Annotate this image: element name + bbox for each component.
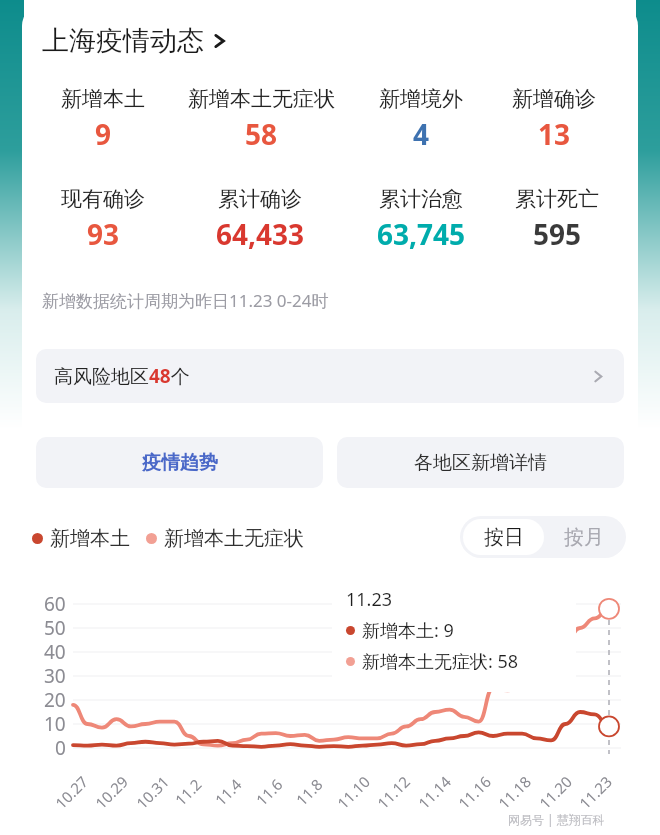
button[interactable]: 疫情趋势 — [36, 437, 323, 488]
staticText: 93 — [87, 215, 120, 253]
staticText: 11.18 — [494, 771, 535, 813]
staticText: 64,433 — [216, 215, 305, 253]
button[interactable]: 上海疫情动态 — [42, 20, 227, 62]
button[interactable]: 高风险地区48个 — [36, 349, 624, 403]
staticText: 新增境外 — [379, 86, 463, 112]
staticText: 10 — [44, 711, 66, 737]
staticText: 新增本土无症状 — [188, 86, 335, 112]
staticText: 11.6 — [251, 774, 287, 810]
staticText: 11.4 — [210, 774, 246, 810]
button[interactable]: 按月 — [545, 519, 623, 555]
staticText: 新增本土: 9 — [362, 618, 454, 643]
staticText: 58 — [245, 115, 278, 153]
staticText: 网易号 | 慧翔百科 — [508, 811, 605, 827]
staticText: 63,745 — [377, 215, 466, 253]
staticText: 30 — [44, 663, 66, 689]
staticText: 累计死亡 — [515, 186, 599, 212]
staticText: 60 — [44, 591, 66, 617]
staticText: 新增本土无症状: 58 — [362, 649, 519, 674]
staticText: 新增本土 — [61, 86, 145, 112]
staticText: 10.29 — [91, 771, 132, 813]
staticText: 10.27 — [51, 771, 92, 813]
staticText: 11.2 — [170, 774, 206, 810]
staticText: 新增本土 — [50, 526, 130, 551]
staticText: 现有确诊 — [61, 186, 145, 212]
staticText: 595 — [533, 215, 582, 253]
staticText: 13 — [538, 115, 571, 153]
staticText: 疫情趋势 — [142, 451, 218, 475]
staticText: 4 — [413, 115, 430, 153]
staticText: 40 — [44, 639, 66, 665]
staticText: 0 — [55, 735, 66, 761]
staticText: 高风险地区48个 — [54, 363, 190, 389]
staticText: 11.20 — [535, 771, 576, 813]
staticText: 按日 — [484, 525, 524, 550]
staticText: 11.23 — [575, 771, 616, 813]
staticText: 累计确诊 — [218, 186, 302, 212]
staticText: 各地区新增详情 — [414, 451, 547, 475]
staticText: 新增本土无症状 — [164, 526, 304, 551]
staticText: 按月 — [564, 525, 604, 550]
staticText: 10.31 — [132, 771, 173, 813]
staticText: 11.8 — [291, 774, 327, 810]
staticText: 20 — [44, 687, 66, 713]
staticText: 11.12 — [373, 771, 414, 813]
staticText: 11.14 — [414, 771, 455, 813]
staticText: 新增数据统计周期为昨日11.23 0-24时 — [42, 289, 329, 312]
staticText: 9 — [95, 115, 112, 153]
button[interactable]: 各地区新增详情 — [337, 437, 624, 488]
staticText: 新增确诊 — [512, 86, 596, 112]
staticText: 11.10 — [333, 771, 374, 813]
staticText: 11.16 — [454, 771, 495, 813]
staticText: 50 — [44, 615, 66, 641]
staticText: 11.23 — [346, 587, 393, 612]
staticText: 累计治愈 — [379, 186, 463, 212]
staticText: 上海疫情动态 — [42, 24, 204, 58]
button[interactable]: 按日 — [463, 519, 544, 555]
